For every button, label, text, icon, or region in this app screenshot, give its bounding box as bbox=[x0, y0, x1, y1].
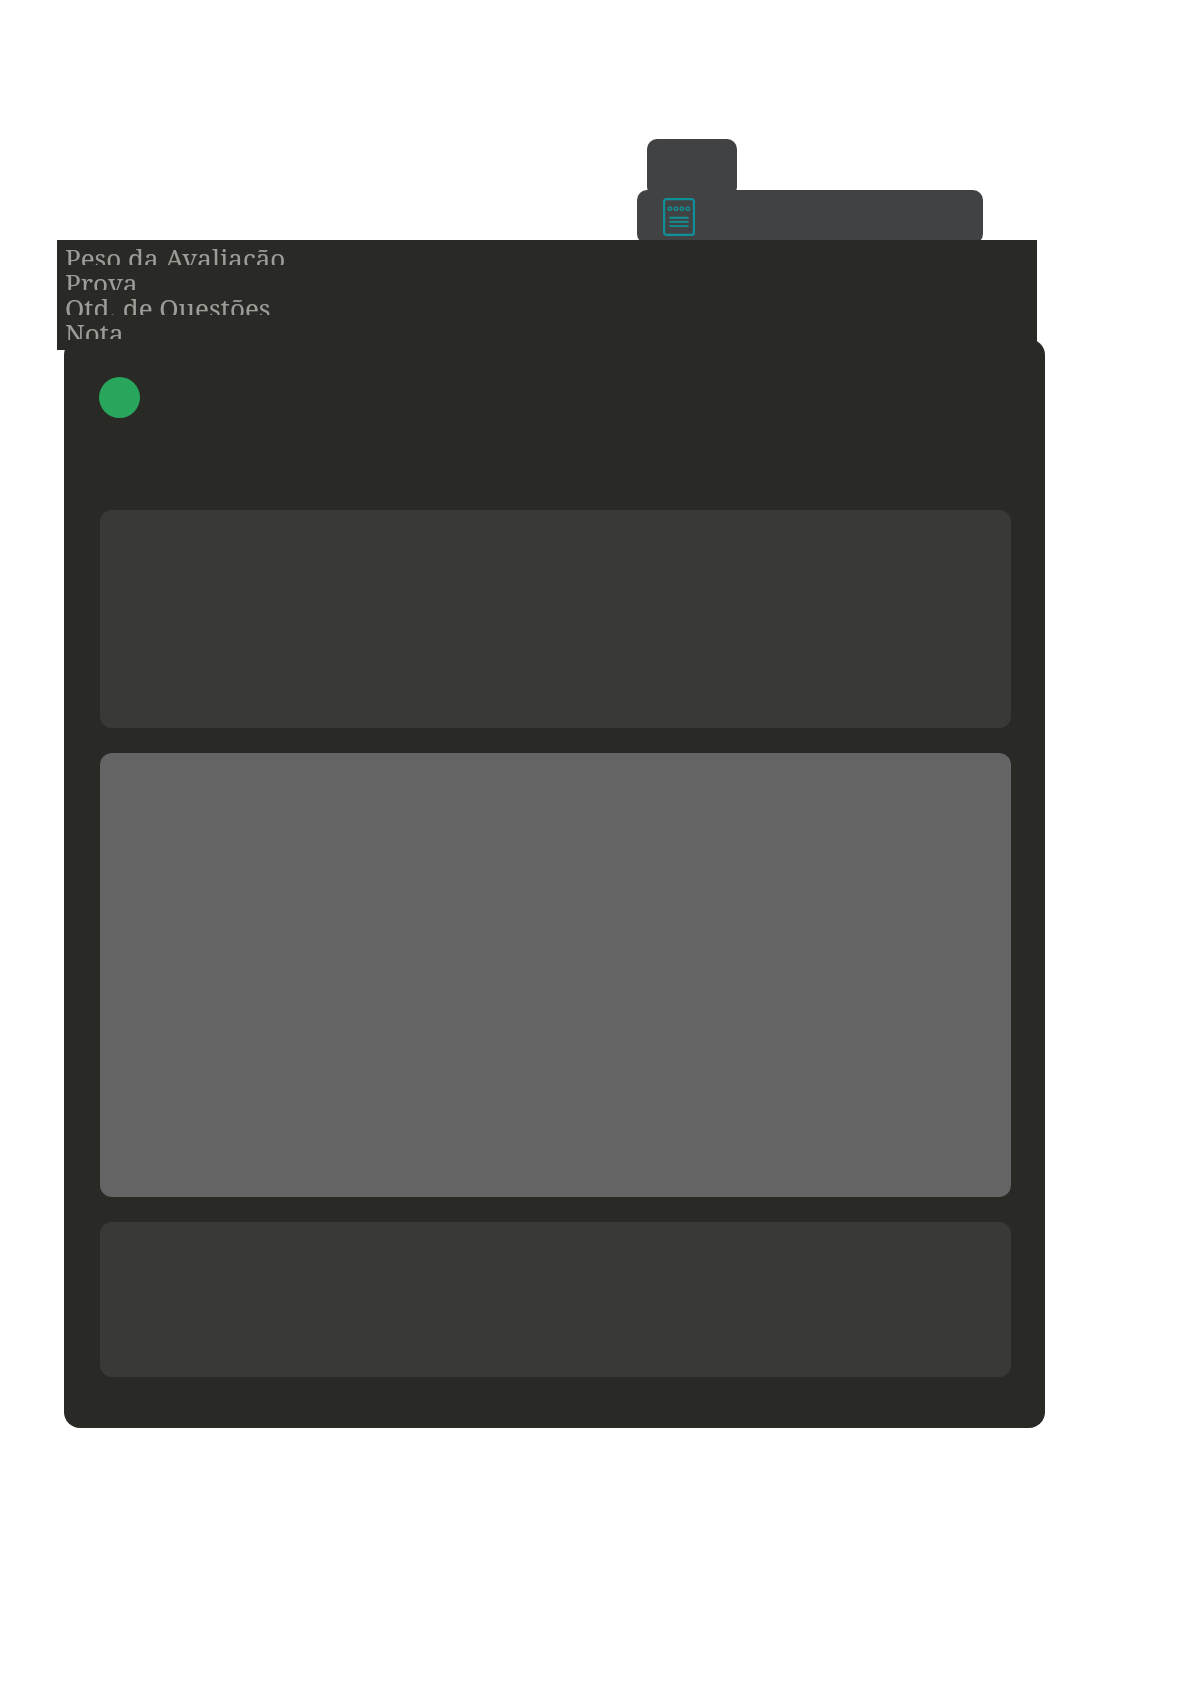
button[interactable]: Overflow menu bbox=[647, 139, 737, 197]
staticText: Peso da Avaliação bbox=[65, 240, 286, 265]
button[interactable]: Assessment details bbox=[663, 198, 695, 236]
button[interactable]: Status bbox=[99, 377, 140, 418]
staticText: Nota bbox=[65, 315, 124, 340]
staticText: Qtd. de Questões bbox=[65, 290, 271, 315]
staticText: Prova bbox=[65, 265, 138, 290]
